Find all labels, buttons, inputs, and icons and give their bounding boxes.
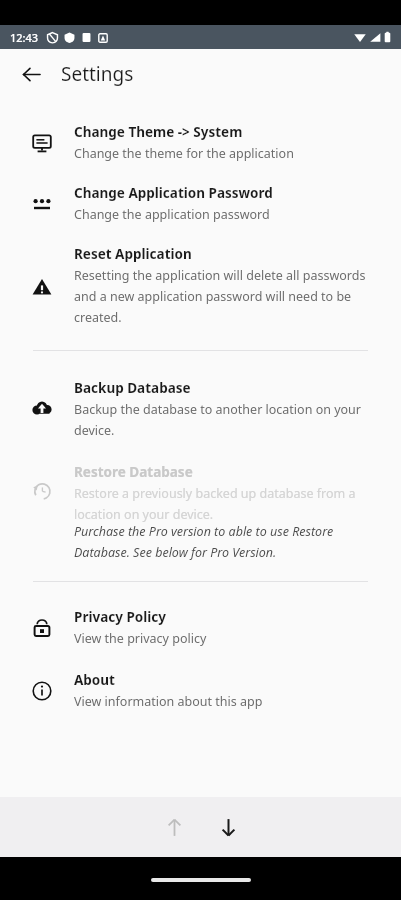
button[interactable]: Privacy Policy	[0, 608, 401, 647]
staticText: View the privacy policy	[74, 630, 207, 647]
staticText: Resetting the application will delete al…	[74, 267, 371, 326]
staticText: View information about this app	[74, 693, 263, 710]
staticText: Change Theme -> System	[74, 123, 243, 141]
staticText: Change the theme for the application	[74, 145, 294, 162]
button[interactable]: Scroll up	[151, 804, 197, 850]
staticText: Settings	[61, 61, 134, 87]
button[interactable]: About	[0, 671, 401, 710]
staticText: About	[74, 671, 115, 689]
button[interactable]: Scroll down	[205, 804, 251, 850]
staticText: Restore a previously backed up database …	[74, 485, 371, 523]
staticText: Backup the database to another location …	[74, 401, 371, 439]
button[interactable]: Backup Database	[0, 379, 401, 439]
staticText: Backup Database	[74, 379, 191, 397]
button[interactable]: Back	[14, 57, 48, 91]
staticText: 12:43	[10, 30, 39, 45]
staticText: Change Application Password	[74, 184, 273, 202]
staticText: Reset Application	[74, 245, 192, 263]
button[interactable]: Change Application Password	[0, 184, 401, 223]
button[interactable]: Restore Database	[0, 463, 401, 561]
button[interactable]: Reset Application	[0, 245, 401, 326]
staticText: Privacy Policy	[74, 608, 166, 626]
staticText: Change the application password	[74, 206, 270, 223]
staticText: Purchase the Pro version to able to use …	[74, 523, 371, 561]
button[interactable]: Change Theme -> System	[0, 123, 401, 162]
staticText: Restore Database	[74, 463, 193, 481]
